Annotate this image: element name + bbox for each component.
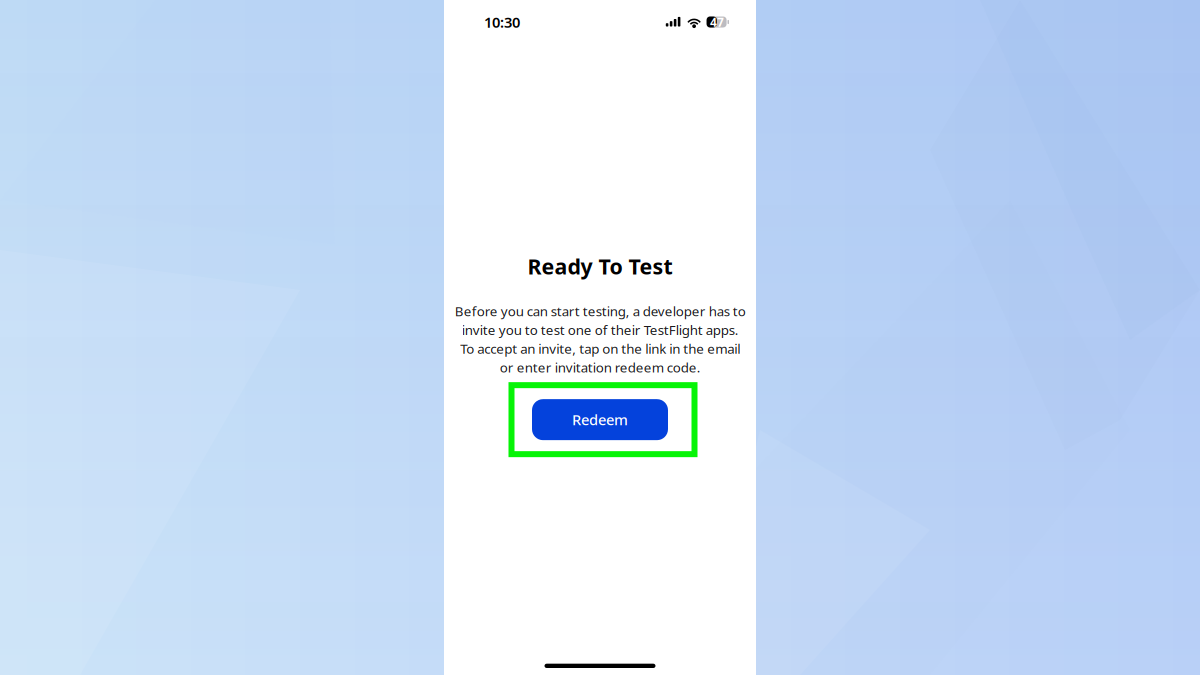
- staticText: Before you can start testing, a develope…: [454, 302, 745, 376]
- button[interactable]: Redeem: [532, 399, 668, 440]
- staticText: 47: [710, 14, 724, 30]
- staticText: 10:30: [484, 12, 520, 32]
- staticText: Redeem: [572, 410, 628, 429]
- staticText: Ready To Test: [527, 252, 672, 280]
